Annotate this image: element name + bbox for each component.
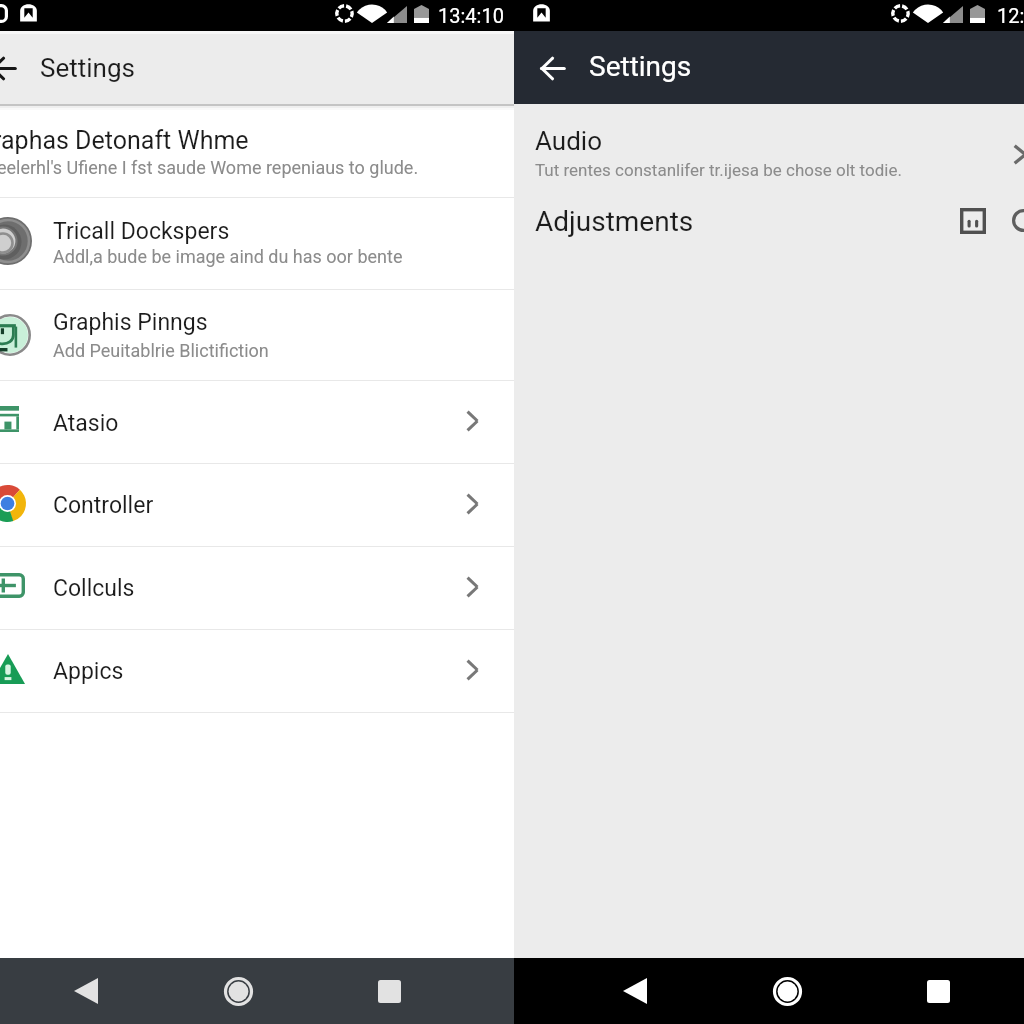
button[interactable]: Controller (0, 463, 514, 546)
button[interactable]: Home (760, 964, 814, 1018)
staticText: Collculs (53, 575, 135, 602)
staticText: Controller (53, 492, 154, 519)
staticText: Add Peuitablrie Blictifiction (53, 340, 269, 361)
button[interactable]: Back (608, 964, 662, 1018)
button[interactable]: Back (0, 44, 27, 92)
staticText: Settings (589, 50, 692, 83)
button[interactable]: Recents (911, 964, 965, 1018)
button[interactable]: Back (528, 44, 576, 92)
button[interactable]: Recents (362, 964, 416, 1018)
button[interactable]: Back (59, 964, 113, 1018)
staticText: Tricall Dockspers (53, 218, 230, 245)
staticText: Appics (53, 658, 124, 685)
staticText: Adjustments (535, 205, 694, 238)
button[interactable]: Audio (514, 104, 1024, 182)
button[interactable]: Appics (0, 629, 514, 712)
button[interactable]: Equalizer (953, 201, 993, 241)
staticText: Tut rentes constanlifer tr.ijesa be chos… (535, 160, 902, 180)
staticText: eelerhl's Ufiene I fst saude Wome repeni… (0, 157, 419, 178)
button[interactable]: Collculs (0, 546, 514, 629)
staticText: Graphis Pinngs (53, 309, 208, 336)
staticText: Settings (40, 53, 135, 83)
button[interactable]: Home (211, 964, 265, 1018)
button[interactable]: Tricall Dockspers (0, 197, 514, 289)
button[interactable]: Adjustments (514, 196, 1024, 252)
staticText: Atasio (53, 410, 119, 437)
staticText: Graphas Detonaft Whme (0, 126, 249, 155)
button[interactable]: Graphis Pinngs (0, 289, 514, 380)
staticText: Audio (535, 126, 602, 156)
staticText: 12: (997, 4, 1024, 27)
staticText: Addl,a bude be image aind du has oor ben… (53, 246, 403, 267)
button[interactable]: Reset (1003, 200, 1024, 240)
button[interactable]: Atasio (0, 380, 514, 463)
staticText: 13:4:10 (438, 4, 504, 27)
